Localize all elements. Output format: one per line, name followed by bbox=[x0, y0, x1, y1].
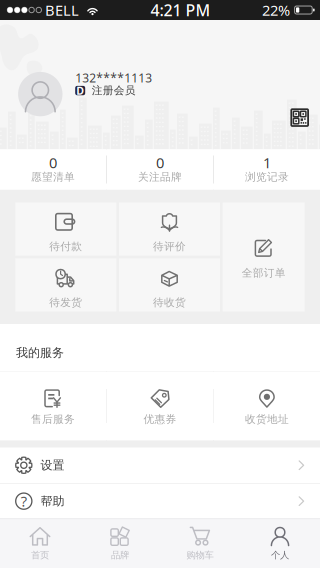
button[interactable]: 收货地址 bbox=[214, 372, 320, 440]
button[interactable]: 品牌 bbox=[80, 519, 160, 568]
button[interactable]: 全部订单 bbox=[223, 202, 305, 311]
staticText: 待评价 bbox=[153, 240, 186, 253]
staticText: 1 bbox=[263, 153, 271, 172]
staticText: 0 bbox=[156, 153, 164, 172]
button[interactable]: 待收货 bbox=[119, 258, 220, 311]
button[interactable]: 1 bbox=[214, 149, 320, 189]
staticText: 优惠券 bbox=[143, 413, 176, 426]
button[interactable]: 购物车 bbox=[160, 519, 240, 568]
staticText: 我的服务 bbox=[16, 345, 64, 360]
staticText: D bbox=[76, 83, 84, 98]
staticText: 22% bbox=[262, 0, 290, 20]
staticText: 品牌 bbox=[111, 549, 129, 561]
staticText: 4:21 PM bbox=[150, 0, 210, 21]
button[interactable]: 扫一扫 bbox=[290, 108, 309, 127]
staticText: 全部订单 bbox=[242, 266, 286, 279]
staticText: 设置 bbox=[41, 458, 65, 473]
staticText: 帮助 bbox=[41, 494, 65, 508]
button[interactable]: 个人 bbox=[240, 519, 320, 568]
staticText: 个人 bbox=[271, 549, 289, 561]
staticText: ? bbox=[21, 491, 27, 511]
button[interactable]: 售后服务 bbox=[0, 372, 106, 440]
staticText: 待发货 bbox=[49, 296, 82, 309]
staticText: 收货地址 bbox=[245, 413, 289, 426]
button[interactable]: ? bbox=[0, 484, 320, 519]
staticText: 愿望清单 bbox=[31, 170, 75, 184]
button[interactable]: 首页 bbox=[0, 519, 80, 568]
staticText: 浏览记录 bbox=[245, 170, 289, 184]
staticText: 待付款 bbox=[49, 240, 82, 253]
staticText: 售后服务 bbox=[31, 413, 75, 426]
button[interactable]: 待评价 bbox=[119, 202, 220, 256]
button[interactable]: 设置 bbox=[0, 447, 320, 483]
button[interactable]: 优惠券 bbox=[107, 372, 213, 440]
staticText: 待收货 bbox=[153, 296, 186, 309]
button[interactable]: 待付款 bbox=[15, 202, 116, 256]
staticText: 首页 bbox=[31, 549, 49, 561]
staticText: 注册会员 bbox=[92, 84, 136, 97]
staticText: 132****1113 bbox=[75, 70, 152, 86]
button[interactable]: 0 bbox=[0, 149, 106, 189]
staticText: 购物车 bbox=[186, 549, 213, 561]
staticText: BELL bbox=[45, 0, 79, 20]
button[interactable]: 待发货 bbox=[15, 258, 116, 311]
button[interactable]: 0 bbox=[107, 149, 213, 189]
staticText: 关注品牌 bbox=[138, 170, 182, 184]
staticText: 0 bbox=[49, 153, 57, 172]
